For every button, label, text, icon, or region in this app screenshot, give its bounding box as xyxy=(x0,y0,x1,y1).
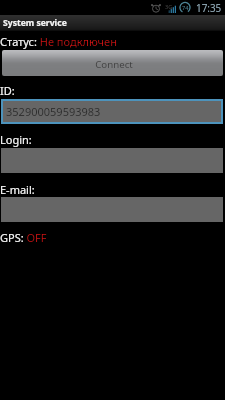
staticText: 352900059593983 xyxy=(6,104,101,119)
staticText: 17:35 xyxy=(196,1,222,14)
staticText: Connect xyxy=(95,58,133,71)
staticText: Статус: Не подключен xyxy=(0,34,117,49)
other: Mobile signal 3G xyxy=(165,3,176,13)
staticText: 74 xyxy=(182,4,189,12)
staticText: GPS: OFF xyxy=(0,230,47,245)
button[interactable]: Connect xyxy=(2,50,223,76)
other: Alarm xyxy=(151,3,161,13)
staticText: System service xyxy=(3,17,67,29)
staticText: ID: xyxy=(0,83,15,98)
other: Battery 74 percent xyxy=(179,2,191,13)
staticText: E-mail: xyxy=(0,182,35,197)
button[interactable]: 352900059593983 xyxy=(3,101,221,122)
staticText: 3G xyxy=(165,3,173,11)
staticText: Login: xyxy=(0,132,32,147)
